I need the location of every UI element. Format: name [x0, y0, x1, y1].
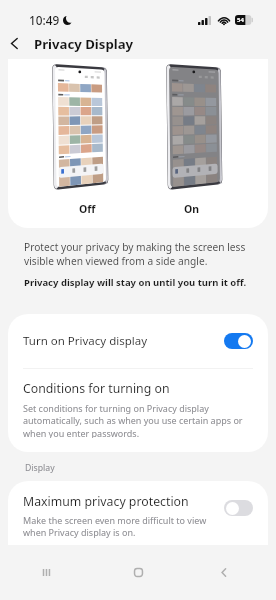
- staticText: Make the screen even more difficult to v…: [23, 514, 218, 539]
- staticText: 10:49: [29, 12, 60, 28]
- staticText: Off: [79, 202, 96, 216]
- button[interactable]: Home: [92, 546, 184, 600]
- staticText: Protect your privacy by making the scree…: [24, 240, 258, 268]
- button[interactable]: On: [224, 333, 253, 349]
- button[interactable]: Turn on Privacy display: [8, 314, 268, 368]
- button[interactable]: Maximum privacy protection: [8, 481, 268, 539]
- button[interactable]: Recent apps: [0, 546, 92, 600]
- staticText: Privacy Display: [34, 35, 134, 53]
- button[interactable]: Navigate up: [0, 29, 29, 58]
- staticText: On: [184, 202, 200, 216]
- staticText: Maximum privacy protection: [23, 493, 189, 510]
- button[interactable]: Conditions for turning on: [8, 369, 268, 452]
- staticText: Display: [25, 462, 55, 474]
- staticText: Privacy display will stay on until you t…: [24, 276, 247, 289]
- staticText: Conditions for turning on: [23, 380, 170, 397]
- staticText: Turn on Privacy display: [23, 333, 224, 349]
- button[interactable]: Off: [224, 500, 253, 516]
- staticText: Set conditions for turning on Privacy di…: [23, 402, 252, 438]
- staticText: 54: [237, 16, 244, 24]
- button[interactable]: Back: [184, 546, 276, 600]
